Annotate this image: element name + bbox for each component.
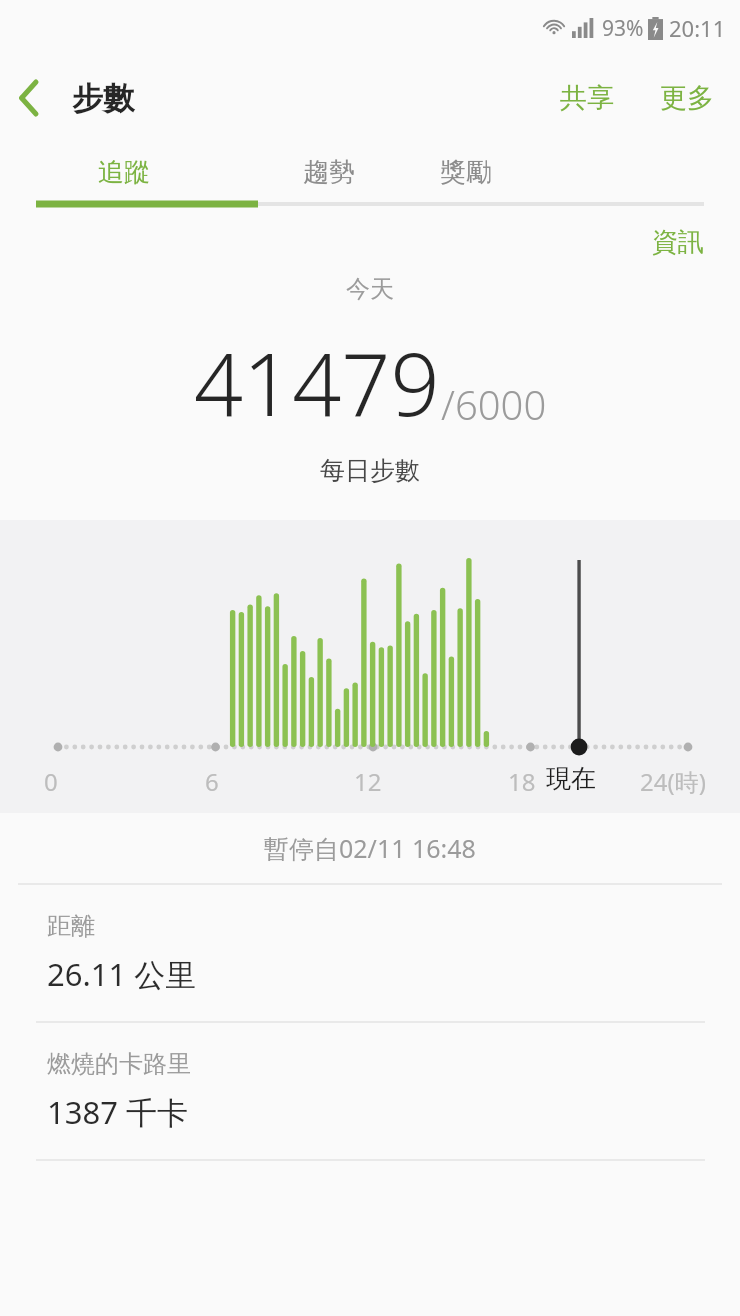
button[interactable]: 趨勢	[247, 140, 411, 204]
button[interactable]: 距離	[0, 885, 740, 1021]
button[interactable]: 獎勵	[411, 140, 521, 204]
staticText: 距離	[47, 911, 95, 941]
staticText: 每日步數	[320, 455, 420, 486]
staticText: 41479	[194, 324, 440, 441]
button[interactable]: 更多	[650, 69, 724, 127]
staticText: 26.11 公里	[47, 953, 197, 995]
staticText: 18	[508, 765, 536, 798]
staticText: 6	[205, 765, 219, 798]
staticText: 12	[354, 765, 382, 798]
staticText: 獎勵	[440, 156, 492, 189]
staticText: 更多	[660, 81, 714, 115]
staticText: 現在	[546, 763, 596, 794]
button[interactable]: 資訊	[644, 218, 712, 267]
staticText: 追蹤	[98, 156, 150, 189]
button[interactable]: 共享	[548, 69, 626, 127]
staticText: 燃燒的卡路里	[47, 1049, 191, 1079]
button[interactable]: Back	[0, 69, 58, 127]
staticText: 93%	[602, 14, 644, 43]
staticText: 資訊	[652, 226, 704, 259]
button[interactable]: 燃燒的卡路里	[0, 1023, 740, 1159]
staticText: 1387 千卡	[47, 1091, 188, 1133]
staticText: 今天	[346, 274, 394, 304]
staticText: 步數	[72, 79, 134, 118]
staticText: 趨勢	[303, 156, 355, 189]
staticText: 共享	[560, 81, 614, 115]
staticText: 20:11	[669, 13, 726, 43]
button[interactable]: 追蹤	[0, 140, 247, 204]
staticText: 24(時)	[640, 765, 706, 798]
staticText: /6000	[441, 377, 547, 431]
staticText: 0	[44, 765, 58, 798]
staticText: 暫停自02/11 16:48	[264, 831, 476, 865]
